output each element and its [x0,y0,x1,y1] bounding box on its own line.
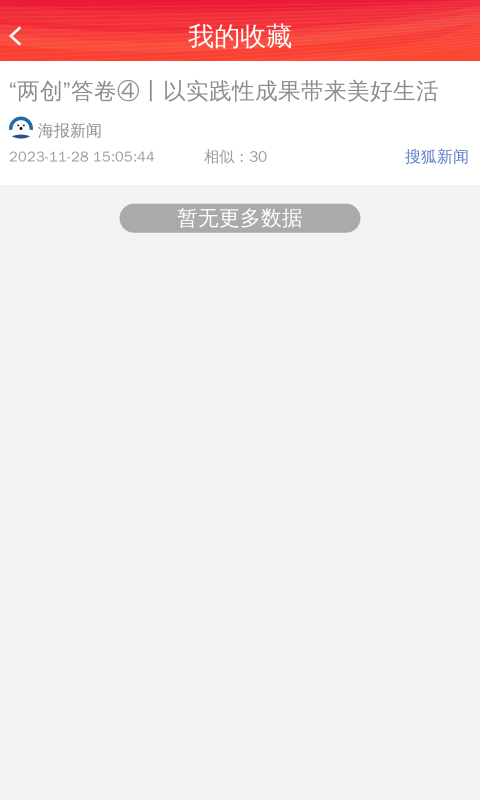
staticText: 我的收藏 [188,20,292,53]
staticText: 搜狐新闻 [405,147,469,167]
staticText: 相似：30 [204,147,267,166]
staticText: 暂无更多数据 [177,205,303,231]
button[interactable]: 暂无更多数据 [119,204,360,233]
button[interactable]: “两创”答卷④丨以实践性成果带来美好生活 [0,61,480,186]
staticText: 海报新闻 [38,121,102,141]
staticText: “两创”答卷④丨以实践性成果带来美好生活 [9,77,439,106]
staticText: 2023-11-28 15:05:44 [9,148,155,166]
button[interactable]: Back [0,14,31,58]
